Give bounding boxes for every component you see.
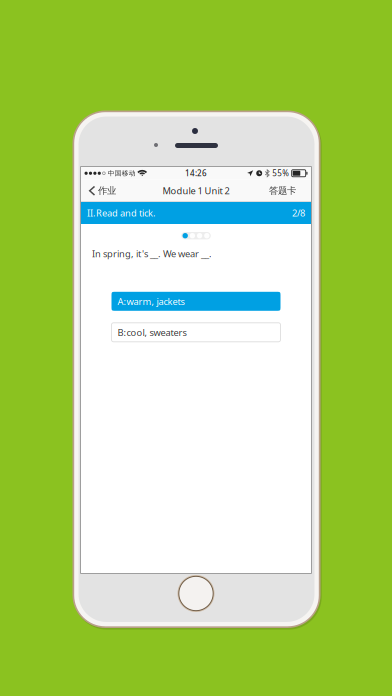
- button[interactable]: B:cool, sweaters: [111, 323, 280, 342]
- button[interactable]: A:warm, jackets: [111, 292, 280, 311]
- staticText: 2/8: [292, 207, 305, 219]
- staticText: A:warm, jackets: [117, 295, 184, 307]
- staticText: II.Read and tick.: [87, 207, 156, 219]
- staticText: 中国移动: [106, 169, 138, 177]
- staticText: In spring, it's __. We wear __.: [92, 247, 212, 260]
- staticText: 答题卡: [269, 185, 296, 196]
- staticText: 14:26: [185, 168, 207, 178]
- staticText: 55%: [272, 168, 289, 178]
- staticText: Module 1 Unit 2: [162, 185, 229, 197]
- button[interactable]: 作业: [81, 181, 122, 201]
- staticText: 作业: [98, 185, 116, 196]
- staticText: B:cool, sweaters: [117, 326, 186, 338]
- button[interactable]: 答题卡: [263, 181, 311, 201]
